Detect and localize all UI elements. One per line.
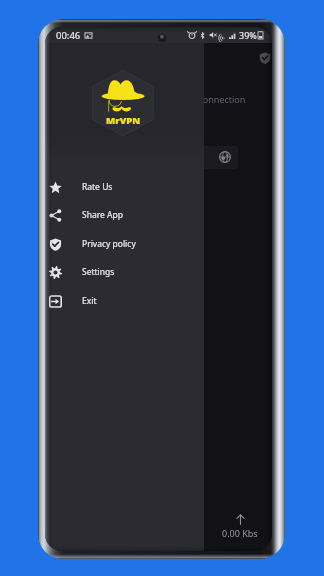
button[interactable]: Rate Us bbox=[45, 173, 204, 201]
staticText: Share App bbox=[82, 209, 123, 221]
staticText: 00:46 bbox=[56, 29, 81, 42]
staticText: Secure your connection bbox=[146, 93, 246, 105]
button[interactable]: Privacy policy bbox=[45, 230, 204, 258]
staticText: 39% bbox=[239, 29, 257, 41]
staticText: 0.00 Kbs bbox=[222, 527, 258, 539]
staticText: Settings bbox=[82, 266, 115, 278]
button[interactable]: Settings bbox=[45, 258, 204, 286]
staticText: Exit bbox=[82, 295, 97, 307]
button[interactable]: Share App bbox=[45, 201, 204, 229]
button[interactable]: Exit bbox=[45, 287, 204, 315]
staticText: MrVPN bbox=[106, 114, 141, 127]
staticText: Privacy policy bbox=[82, 238, 136, 250]
button[interactable]: Connection status bbox=[256, 49, 272, 67]
staticText: Rate Us bbox=[82, 181, 113, 193]
button[interactable]: Select server region bbox=[175, 146, 238, 169]
